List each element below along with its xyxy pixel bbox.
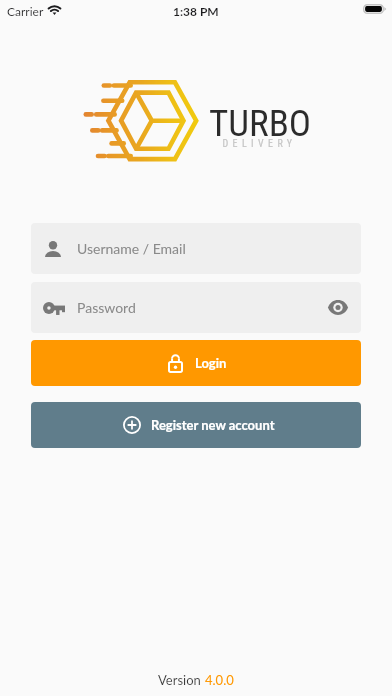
button[interactable]: Login xyxy=(31,340,361,386)
button[interactable]: Show password xyxy=(318,282,358,333)
staticText: Register new account xyxy=(151,417,275,433)
staticText: DELIVERY xyxy=(209,138,310,150)
staticText: 1:38 PM xyxy=(173,4,219,18)
staticText: Version xyxy=(158,672,205,688)
staticText: Login xyxy=(195,355,227,371)
button[interactable]: Register new account xyxy=(31,402,361,448)
button[interactable]: Password xyxy=(31,282,361,333)
staticText: Password xyxy=(77,299,136,316)
button[interactable]: Username / Email xyxy=(31,223,361,274)
staticText: Username / Email xyxy=(77,240,186,257)
staticText: 4.0.0 xyxy=(205,672,234,688)
staticText: Carrier xyxy=(7,4,44,18)
staticText: TURBO xyxy=(209,102,312,145)
